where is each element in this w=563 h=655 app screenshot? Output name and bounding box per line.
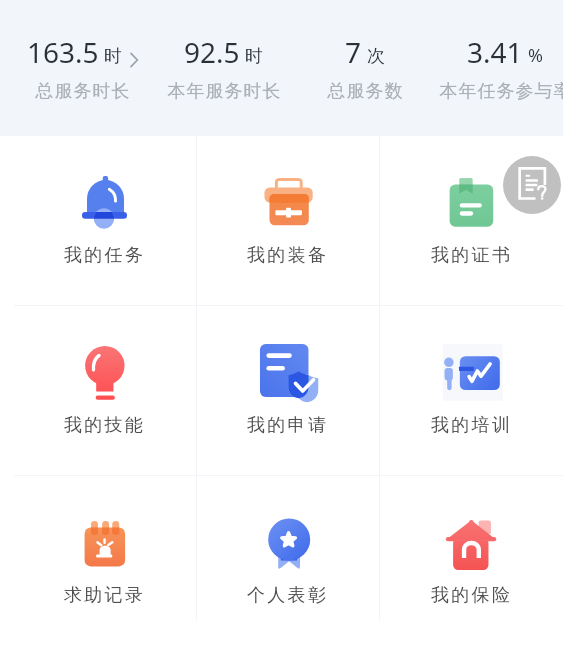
button[interactable]: 我的培训 [380, 306, 563, 475]
staticText: 次 [367, 45, 385, 68]
staticText: 我的技能 [64, 414, 146, 437]
button[interactable]: 我的申请 [197, 306, 379, 475]
staticText: 163.5 [27, 33, 99, 71]
staticText: 我的申请 [247, 414, 329, 437]
button[interactable]: 92.5 [153, 0, 294, 103]
staticText: 92.5 [184, 33, 240, 71]
button[interactable]: 我的装备 [197, 136, 379, 305]
staticText: 我的保险 [431, 584, 513, 607]
button[interactable]: 163.5 [12, 0, 153, 103]
button[interactable]: 求助记录 [14, 476, 196, 621]
staticText: 时 [245, 45, 263, 68]
button[interactable]: Help and feedback [503, 156, 561, 214]
staticText: 我的任务 [64, 244, 146, 267]
staticText: 本年任务参与率 [439, 80, 563, 103]
button[interactable]: 7 [294, 0, 435, 103]
button[interactable]: 我的证书 [380, 136, 563, 305]
staticText: 求助记录 [64, 584, 146, 607]
staticText: 我的装备 [247, 244, 329, 267]
staticText: 本年服务时长 [167, 80, 281, 103]
button[interactable]: 我的保险 [380, 476, 563, 621]
staticText: 总服务时长 [35, 80, 130, 103]
staticText: 我的证书 [431, 244, 513, 267]
button[interactable]: 我的任务 [14, 136, 196, 305]
button[interactable]: 我的技能 [14, 306, 196, 475]
staticText: % [528, 43, 543, 68]
staticText: 3.41 [467, 33, 523, 71]
staticText: 个人表彰 [247, 584, 329, 607]
staticText: 7 [345, 33, 362, 71]
button[interactable]: 3.41 [435, 0, 563, 103]
staticText: 总服务数 [327, 80, 403, 103]
button[interactable]: 个人表彰 [197, 476, 379, 621]
staticText: 我的培训 [431, 414, 513, 437]
staticText: 时 [104, 45, 122, 68]
